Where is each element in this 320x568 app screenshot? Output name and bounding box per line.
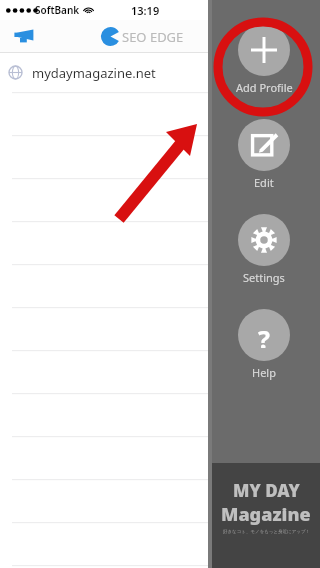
staticText: Edit <box>254 175 274 190</box>
staticText: 13:19 <box>131 3 160 18</box>
button[interactable]: Help <box>216 307 312 382</box>
button[interactable]: Announcements <box>10 23 38 51</box>
staticText: SEO EDGE <box>122 28 184 46</box>
button[interactable]: MY DAY <box>212 463 320 568</box>
staticText: mydaymagazine.net <box>32 64 156 82</box>
staticText: Help <box>252 365 276 380</box>
staticText: ? <box>258 322 270 348</box>
button[interactable]: Add Profile <box>216 22 312 97</box>
staticText: 好きなコト、モノをもっと身近にアップ！ <box>223 529 310 535</box>
staticText: Magazine <box>221 502 311 527</box>
staticText: MY DAY <box>233 479 300 502</box>
staticText: Add Profile <box>236 80 293 95</box>
staticText: SoftBank <box>35 3 80 17</box>
button[interactable]: mydaymagazine.net <box>0 53 320 92</box>
button[interactable]: Settings <box>216 212 312 287</box>
staticText: Settings <box>243 270 285 285</box>
button[interactable]: Edit <box>216 117 312 192</box>
